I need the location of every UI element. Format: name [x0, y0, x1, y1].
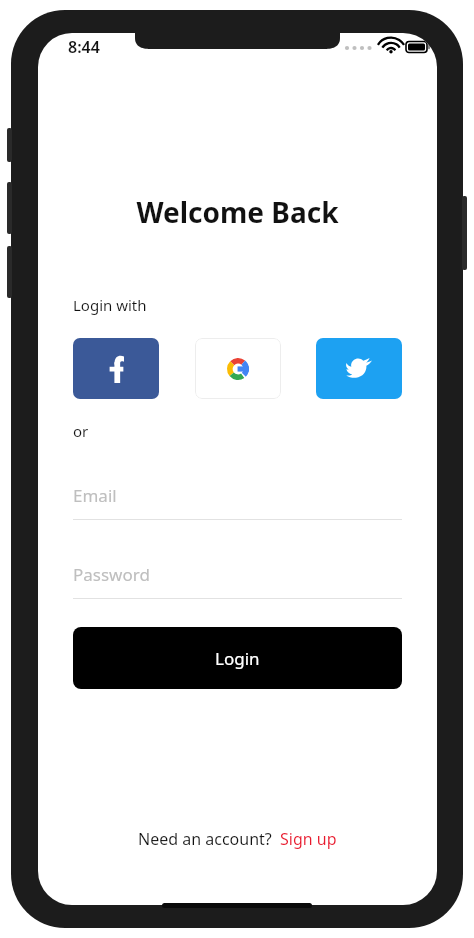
staticText: Password: [73, 563, 150, 586]
button[interactable]: Login with Facebook: [73, 338, 159, 399]
button[interactable]: Login with Twitter: [316, 338, 402, 399]
staticText: Login: [215, 647, 260, 670]
staticText: Need an account?: [138, 828, 272, 850]
button[interactable]: Sign up: [279, 826, 338, 852]
button[interactable]: Email: [73, 483, 402, 520]
button[interactable]: Login with Google: [195, 338, 281, 399]
staticText: or: [73, 421, 89, 441]
button[interactable]: Password: [73, 562, 402, 599]
staticText: Sign up: [280, 828, 337, 850]
staticText: Email: [73, 484, 117, 507]
staticText: Login with: [73, 295, 147, 315]
staticText: 8:44: [68, 36, 100, 58]
button[interactable]: Login: [73, 627, 402, 689]
staticText: Welcome Back: [136, 193, 339, 231]
